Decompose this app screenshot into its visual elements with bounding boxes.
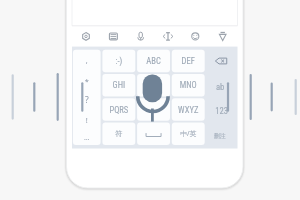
button[interactable]: Voice input keyboard illustration [0, 0, 300, 200]
